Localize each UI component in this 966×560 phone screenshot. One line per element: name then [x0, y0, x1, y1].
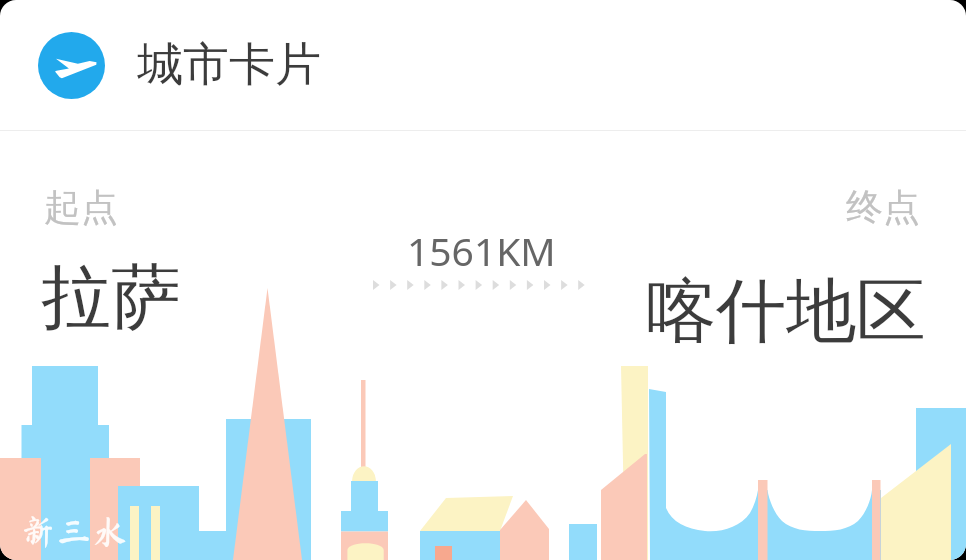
- staticText: 喀什地区: [646, 268, 926, 356]
- staticText: 起点: [44, 184, 118, 231]
- staticText: 城市卡片: [137, 36, 321, 94]
- staticText: 新三水: [21, 514, 129, 548]
- staticText: 1561KM: [407, 224, 556, 277]
- staticText: 终点: [846, 184, 920, 231]
- staticText: 拉萨: [41, 254, 181, 342]
- button[interactable]: Flight: [0, 0, 966, 130]
- other: Flight: [38, 32, 105, 99]
